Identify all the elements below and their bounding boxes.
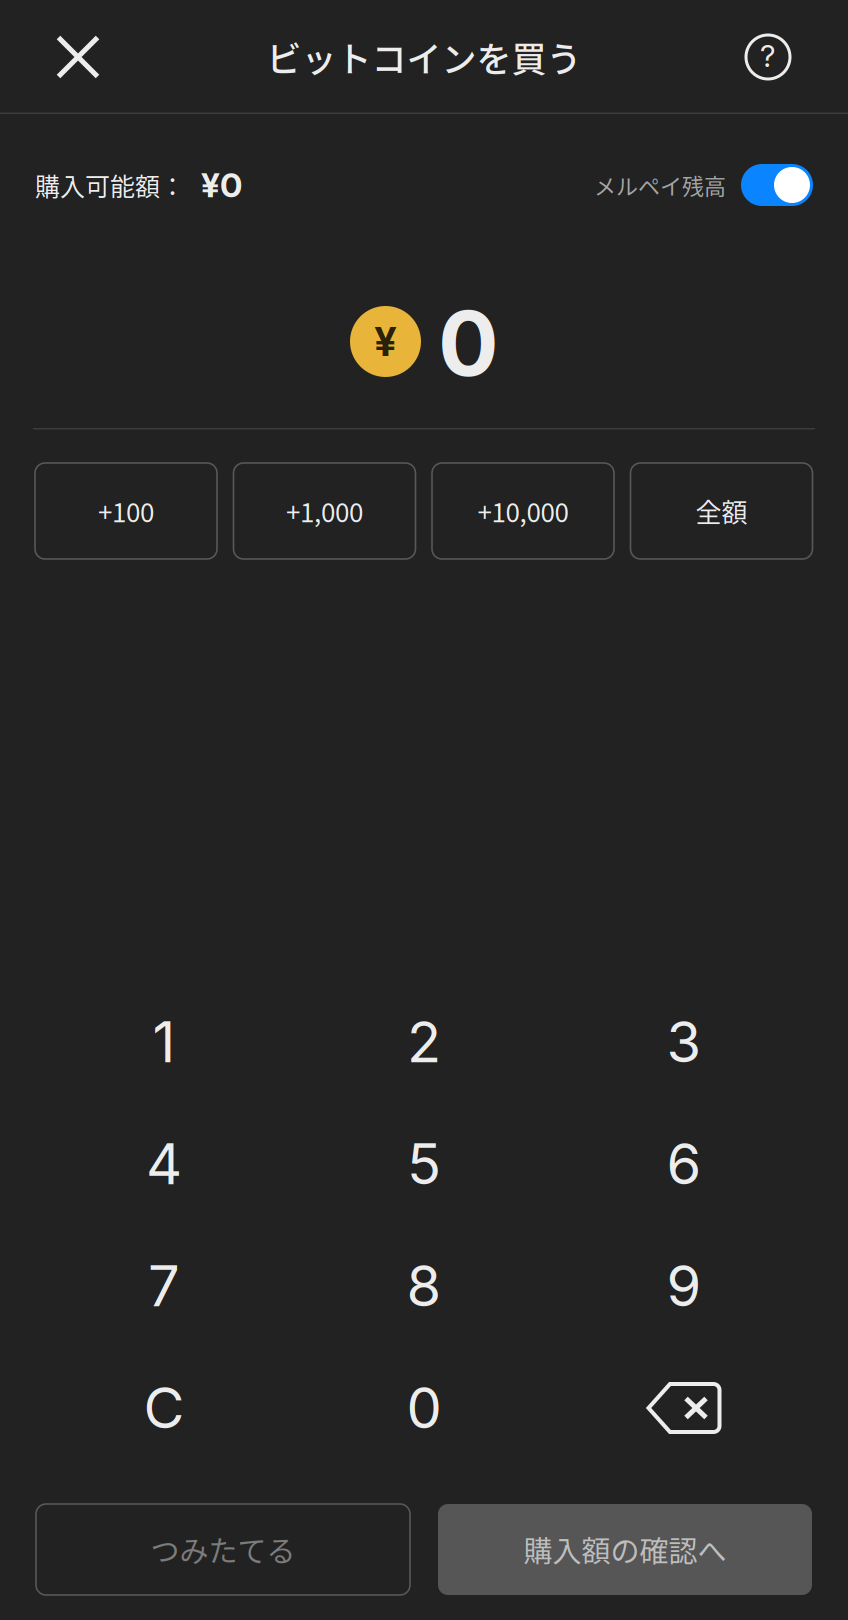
button[interactable]: 7 <box>34 1225 294 1347</box>
staticText: 0 <box>406 1374 441 1442</box>
staticText: +1,000 <box>286 492 363 530</box>
button[interactable]: +100 <box>35 463 217 559</box>
button[interactable]: 2 <box>294 981 554 1103</box>
staticText: 7 <box>148 1252 180 1320</box>
staticText: 2 <box>407 1008 441 1076</box>
staticText: 3 <box>666 1008 701 1076</box>
staticText: メルペイ残高 <box>594 169 726 201</box>
button[interactable]: つみたてる <box>36 1504 410 1595</box>
staticText: 0 <box>438 289 499 397</box>
button[interactable]: C <box>34 1347 294 1469</box>
staticText: +10,000 <box>477 492 568 530</box>
staticText: 8 <box>406 1252 441 1320</box>
staticText: +100 <box>98 492 154 530</box>
staticText: 5 <box>407 1130 441 1198</box>
button[interactable]: ヘルプ <box>720 0 816 114</box>
button[interactable]: 削除 <box>554 1347 814 1469</box>
staticText: ¥0 <box>185 164 242 205</box>
button[interactable]: 8 <box>294 1225 554 1347</box>
button[interactable]: 0 <box>294 1347 554 1469</box>
button[interactable]: 購入額の確認へ <box>438 1504 812 1595</box>
staticText: 購入額の確認へ <box>523 1528 726 1570</box>
button[interactable]: 閉じる <box>30 0 126 114</box>
button[interactable]: 9 <box>554 1225 814 1347</box>
staticText: ? <box>760 38 776 74</box>
staticText: つみたてる <box>150 1528 295 1570</box>
staticText: 9 <box>666 1252 701 1320</box>
button[interactable]: +1,000 <box>233 463 415 559</box>
button[interactable]: +10,000 <box>432 463 614 559</box>
button[interactable]: 6 <box>554 1103 814 1225</box>
button[interactable]: 5 <box>294 1103 554 1225</box>
staticText: 全額 <box>695 492 747 530</box>
staticText: 購入可能額： <box>35 167 185 203</box>
staticText: C <box>143 1374 184 1442</box>
button[interactable]: 1 <box>34 981 294 1103</box>
button[interactable]: 全額 <box>630 463 812 559</box>
button[interactable]: 4 <box>34 1103 294 1225</box>
staticText: ビットコインを買う <box>266 32 581 82</box>
staticText: ¥ <box>374 317 396 366</box>
staticText: 6 <box>666 1130 701 1198</box>
staticText: 1 <box>152 1008 175 1076</box>
staticText: 4 <box>146 1130 182 1198</box>
button[interactable]: メルペイ残高を使う <box>741 164 813 206</box>
button[interactable]: 3 <box>554 981 814 1103</box>
